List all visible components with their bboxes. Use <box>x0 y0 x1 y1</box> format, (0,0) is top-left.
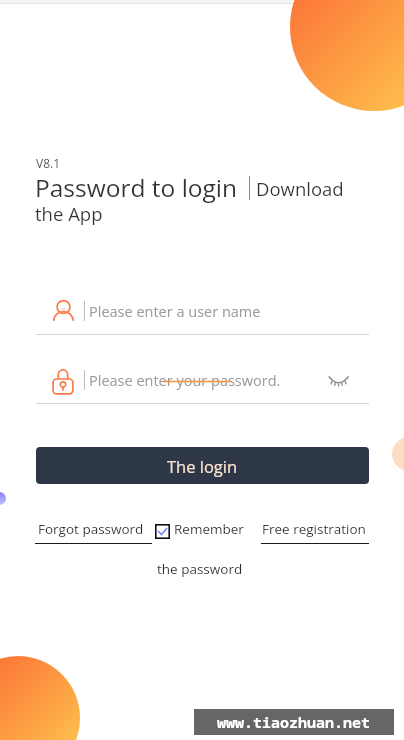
staticText: The login <box>167 455 238 477</box>
staticText: V8.1 <box>36 155 61 171</box>
staticText: the App <box>35 201 103 226</box>
staticText: Forgot password <box>38 520 144 538</box>
button[interactable]: Show password <box>321 370 351 400</box>
staticText: www.tiaozhuan.net <box>217 712 371 732</box>
staticText: Remember <box>174 520 244 538</box>
button[interactable]: Free registration <box>261 518 369 544</box>
button[interactable]: The login <box>36 447 369 484</box>
staticText: Download <box>256 176 344 201</box>
button[interactable]: Download <box>256 176 344 201</box>
staticText: Password to login <box>35 171 238 204</box>
staticText: the password <box>157 560 243 578</box>
button[interactable]: the App <box>35 201 103 226</box>
staticText: Please enter your password. <box>89 371 281 391</box>
staticText: Free registration <box>262 520 366 538</box>
staticText: Please enter a user name <box>89 302 261 322</box>
button[interactable]: Remember <box>154 518 256 580</box>
button[interactable]: Forgot password <box>35 518 152 544</box>
